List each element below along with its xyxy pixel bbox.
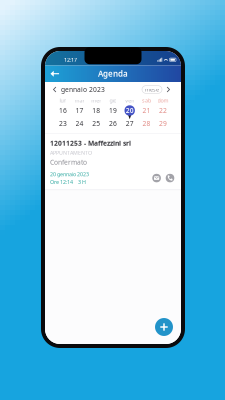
button[interactable]: 16 bbox=[54, 105, 71, 116]
button[interactable]: 12011253 - Maffezzini srl bbox=[45, 134, 181, 189]
staticText: 26 bbox=[109, 119, 117, 128]
staticText: mese bbox=[145, 86, 159, 93]
button[interactable]: mese bbox=[142, 86, 162, 93]
button[interactable]: Chiama bbox=[162, 173, 175, 183]
staticText: mer bbox=[91, 97, 101, 104]
button[interactable]: 25 bbox=[88, 118, 105, 129]
staticText: 19 bbox=[109, 106, 117, 115]
staticText: Agenda bbox=[98, 68, 128, 79]
staticText: 29 bbox=[159, 119, 167, 128]
button[interactable]: 19 bbox=[105, 105, 121, 116]
staticText: gio bbox=[109, 97, 116, 104]
button[interactable]: 28 bbox=[138, 118, 155, 129]
staticText: sab bbox=[142, 97, 151, 104]
staticText: APPUNTAMENTO bbox=[50, 149, 92, 156]
button[interactable]: 29 bbox=[155, 118, 171, 129]
staticText: 18 bbox=[92, 106, 100, 115]
button[interactable]: 27 bbox=[121, 118, 138, 129]
button[interactable]: Nuovo appuntamento bbox=[152, 315, 176, 339]
button[interactable]: Indietro bbox=[45, 65, 65, 82]
staticText: 23 bbox=[59, 119, 67, 128]
staticText: Ore 12:14 3 H bbox=[50, 178, 86, 185]
button[interactable]: 26 bbox=[105, 118, 121, 129]
button[interactable]: 20 bbox=[121, 105, 138, 116]
staticText: mar bbox=[75, 97, 85, 104]
staticText: ven bbox=[125, 97, 134, 104]
staticText: 27 bbox=[126, 119, 134, 128]
button[interactable]: 21 bbox=[138, 105, 155, 116]
staticText: 28 bbox=[142, 119, 150, 128]
staticText: 16 bbox=[59, 106, 67, 115]
staticText: 22 bbox=[159, 106, 167, 115]
button[interactable]: 18 bbox=[88, 105, 105, 116]
button[interactable]: 23 bbox=[54, 118, 71, 129]
button[interactable]: Invia email bbox=[152, 173, 162, 183]
staticText: 21 bbox=[142, 106, 150, 115]
button[interactable]: 17 bbox=[71, 105, 88, 116]
staticText: 20 gennaio 2023 bbox=[50, 171, 89, 178]
staticText: 20 bbox=[126, 106, 134, 115]
staticText: 12:17 bbox=[64, 56, 77, 63]
staticText: Confermato bbox=[50, 158, 87, 167]
staticText: 24 bbox=[76, 119, 84, 128]
staticText: gennaio 2023 bbox=[61, 85, 105, 94]
staticText: 12011253 - Maffezzini srl bbox=[50, 139, 131, 148]
button[interactable]: Mese precedente bbox=[49, 83, 61, 96]
staticText: dom bbox=[158, 97, 169, 104]
staticText: 17 bbox=[76, 106, 84, 115]
button[interactable]: Mese successivo bbox=[162, 83, 175, 96]
staticText: lun bbox=[59, 97, 66, 104]
staticText: 25 bbox=[92, 119, 100, 128]
button[interactable]: 24 bbox=[71, 118, 88, 129]
button[interactable]: 22 bbox=[155, 105, 171, 116]
